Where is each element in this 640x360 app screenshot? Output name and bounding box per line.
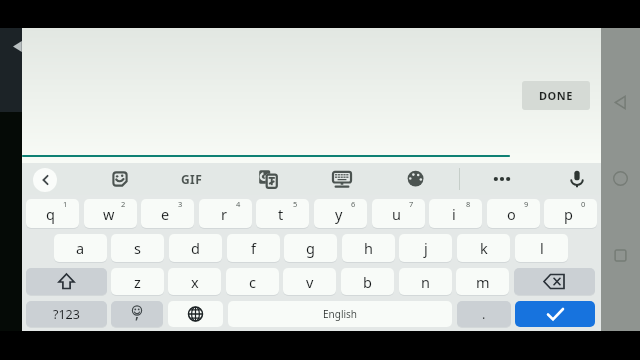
staticText: 7	[409, 199, 414, 209]
button[interactable]: o	[487, 199, 540, 228]
staticText: r	[221, 204, 227, 224]
staticText: y	[335, 204, 343, 224]
staticText: 4	[236, 199, 241, 209]
staticText: ?123	[53, 306, 80, 323]
button[interactable]: a	[54, 234, 107, 262]
button[interactable]: Translate	[257, 168, 279, 190]
staticText: h	[364, 238, 373, 258]
staticText: DONE	[539, 88, 573, 103]
button[interactable]: b	[341, 268, 394, 295]
staticText: t	[278, 204, 284, 224]
button[interactable]: English	[228, 301, 452, 327]
staticText: j	[424, 238, 428, 258]
button[interactable]: Enter	[515, 301, 595, 327]
staticText: d	[191, 238, 200, 258]
staticText: k	[480, 238, 488, 258]
button[interactable]: r	[199, 199, 252, 228]
staticText: a	[76, 238, 85, 258]
staticText: i	[452, 204, 456, 224]
button[interactable]: Emoji	[111, 301, 163, 327]
button[interactable]: GIF	[170, 163, 214, 195]
staticText: p	[564, 204, 573, 224]
staticText: o	[507, 204, 516, 224]
staticText: c	[249, 272, 256, 292]
staticText: 9	[524, 199, 529, 209]
staticText: f	[251, 238, 256, 258]
staticText: m	[476, 272, 490, 292]
button[interactable]: q	[26, 199, 79, 228]
button[interactable]: x	[168, 268, 221, 295]
button[interactable]: c	[226, 268, 279, 295]
staticText: v	[306, 272, 314, 292]
staticText: l	[540, 238, 544, 258]
button[interactable]: h	[342, 234, 395, 262]
button[interactable]: j	[399, 234, 452, 262]
button[interactable]: Recents	[609, 244, 632, 267]
staticText: 3	[178, 199, 183, 209]
staticText: 5	[293, 199, 298, 209]
button[interactable]: Backspace	[514, 268, 595, 295]
button[interactable]: Shift	[26, 268, 107, 295]
button[interactable]: y	[314, 199, 367, 228]
button[interactable]: ?123	[26, 301, 107, 327]
button[interactable]: v	[283, 268, 336, 295]
button[interactable]: Home	[609, 167, 632, 190]
staticText: n	[421, 272, 430, 292]
button[interactable]: z	[111, 268, 164, 295]
button[interactable]: n	[399, 268, 452, 295]
button[interactable]: i	[429, 199, 482, 228]
button[interactable]: t	[256, 199, 309, 228]
staticText: 2	[121, 199, 126, 209]
staticText: w	[103, 204, 115, 224]
button[interactable]: u	[372, 199, 425, 228]
staticText: b	[363, 272, 372, 292]
staticText: x	[191, 272, 199, 292]
button[interactable]: m	[456, 268, 509, 295]
staticText: GIF	[181, 171, 203, 187]
button[interactable]: k	[457, 234, 510, 262]
button[interactable]: Change language	[168, 301, 223, 327]
button[interactable]: .	[457, 301, 511, 327]
button[interactable]: e	[141, 199, 194, 228]
button[interactable]: Theme	[405, 168, 427, 190]
button[interactable]: Voice input	[566, 168, 588, 190]
button[interactable]: DONE	[522, 81, 590, 110]
button[interactable]: Close keyboard	[33, 168, 57, 192]
staticText: .	[482, 306, 486, 323]
button[interactable]: Stickers	[109, 168, 131, 190]
staticText: 1	[63, 199, 68, 209]
button[interactable]: f	[227, 234, 280, 262]
staticText: 8	[466, 199, 471, 209]
button[interactable]: More options	[491, 168, 513, 190]
button[interactable]: d	[169, 234, 222, 262]
staticText: e	[161, 204, 170, 224]
staticText: u	[392, 204, 401, 224]
staticText: z	[134, 272, 141, 292]
button[interactable]: p	[544, 199, 597, 228]
staticText: 0	[581, 199, 586, 209]
staticText: English	[323, 307, 358, 321]
staticText: g	[306, 238, 315, 258]
staticText: s	[134, 238, 141, 258]
button[interactable]: s	[111, 234, 164, 262]
button[interactable]: g	[284, 234, 337, 262]
button[interactable]: Keyboard layout	[331, 168, 353, 190]
staticText: q	[46, 204, 55, 224]
button[interactable]: w	[84, 199, 137, 228]
button[interactable]: l	[515, 234, 568, 262]
staticText: 6	[351, 199, 356, 209]
button[interactable]: Back	[609, 91, 632, 114]
